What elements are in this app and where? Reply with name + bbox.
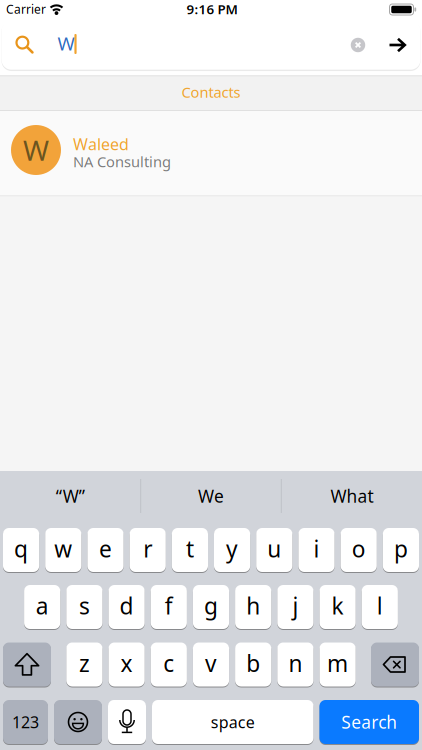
button[interactable]: “W” — [1, 474, 139, 518]
staticText: m — [327, 648, 348, 678]
button[interactable]: m — [319, 641, 356, 687]
staticText: l — [377, 590, 383, 621]
staticText: n — [288, 648, 302, 678]
button[interactable] — [388, 38, 406, 52]
button[interactable]: q — [3, 527, 39, 573]
button[interactable]: i — [298, 527, 335, 573]
staticText: t — [186, 533, 194, 564]
staticText: p — [394, 533, 408, 564]
button[interactable]: y — [214, 527, 250, 573]
staticText: 9:16 PM — [186, 0, 237, 18]
button[interactable]: 123 — [3, 699, 48, 745]
staticText: i — [313, 533, 319, 564]
staticText: W — [57, 31, 74, 56]
button[interactable]: z — [66, 641, 102, 687]
staticText: Carrier — [6, 1, 46, 17]
staticText: x — [121, 648, 133, 678]
button[interactable]: w — [45, 527, 81, 573]
button[interactable]: t — [172, 527, 208, 573]
staticText: Contacts — [181, 82, 240, 102]
staticText: c — [163, 648, 174, 678]
button[interactable]: c — [151, 641, 187, 687]
button[interactable]: f — [151, 584, 187, 630]
staticText: 123 — [12, 711, 39, 733]
staticText: Search — [341, 710, 397, 733]
button[interactable]: k — [319, 584, 356, 630]
staticText: NA Consulting — [73, 152, 171, 171]
staticText: b — [246, 648, 260, 678]
staticText: space — [211, 711, 255, 733]
staticText: h — [246, 590, 260, 621]
button[interactable]: space — [152, 699, 313, 745]
staticText: r — [143, 533, 152, 564]
button[interactable]: We — [142, 474, 280, 518]
button[interactable]: a — [24, 584, 60, 630]
button[interactable]: p — [383, 527, 419, 573]
staticText: o — [352, 533, 366, 564]
staticText: w — [54, 533, 72, 564]
button[interactable] — [3, 641, 51, 687]
button[interactable]: x — [108, 641, 145, 687]
button[interactable] — [54, 699, 102, 745]
staticText: We — [198, 484, 224, 507]
staticText: u — [267, 533, 281, 564]
button[interactable]: s — [66, 584, 102, 630]
staticText: “W” — [56, 484, 85, 507]
button[interactable]: g — [193, 584, 229, 630]
staticText: e — [99, 533, 112, 564]
staticText: y — [226, 533, 238, 564]
button[interactable] — [371, 641, 419, 687]
staticText: g — [204, 590, 218, 621]
button[interactable] — [1, 21, 420, 70]
button[interactable]: h — [235, 584, 271, 630]
staticText: W — [23, 131, 49, 169]
button[interactable] — [351, 38, 365, 52]
button[interactable]: Search — [319, 699, 419, 745]
button[interactable]: u — [256, 527, 292, 573]
button[interactable]: b — [235, 641, 271, 687]
button[interactable]: e — [87, 527, 124, 573]
staticText: k — [332, 590, 344, 621]
button[interactable]: r — [130, 527, 166, 573]
staticText: v — [205, 648, 217, 678]
staticText: f — [165, 590, 173, 621]
staticText: s — [79, 590, 90, 621]
button[interactable] — [108, 699, 146, 745]
button[interactable]: n — [277, 641, 313, 687]
button[interactable]: v — [193, 641, 229, 687]
button[interactable]: j — [277, 584, 313, 630]
staticText: d — [120, 590, 134, 621]
staticText: z — [79, 648, 90, 678]
button[interactable]: W — [0, 110, 422, 195]
button[interactable]: o — [341, 527, 377, 573]
staticText: j — [292, 590, 298, 621]
button[interactable]: l — [362, 584, 398, 630]
staticText: a — [36, 590, 49, 621]
staticText: What — [330, 484, 373, 507]
staticText: Waleed — [73, 133, 129, 155]
button[interactable]: d — [108, 584, 145, 630]
staticText: q — [14, 533, 28, 564]
button[interactable]: What — [283, 474, 421, 518]
